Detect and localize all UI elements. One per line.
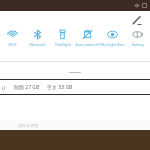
staticText: Blue light filter xyxy=(100,42,125,47)
staticText: 削除 27 GB xyxy=(14,84,40,91)
button[interactable]: Battery xyxy=(125,29,150,53)
staticText: Flashlight xyxy=(55,42,71,47)
button[interactable]: Wi-Fi xyxy=(0,29,25,53)
button[interactable]: Flashlight xyxy=(50,29,75,53)
staticText: Bluetooth xyxy=(29,42,46,47)
staticText: Auto-rotate off xyxy=(75,42,100,47)
staticText: り xyxy=(1,85,7,91)
staticText: 空き 53 GB xyxy=(47,84,73,91)
staticText: 通知を管理 xyxy=(18,123,39,128)
staticText: Battery xyxy=(132,42,144,47)
button[interactable]: Bluetooth xyxy=(25,29,50,53)
button[interactable]: Blue light filter xyxy=(100,29,125,53)
staticText: Wi-Fi xyxy=(8,42,17,47)
button[interactable]: Auto-rotate off xyxy=(75,29,100,53)
button[interactable]: り xyxy=(0,80,150,94)
button[interactable]: Edit xyxy=(130,13,144,27)
button[interactable]: 通知を管理 xyxy=(0,121,150,130)
